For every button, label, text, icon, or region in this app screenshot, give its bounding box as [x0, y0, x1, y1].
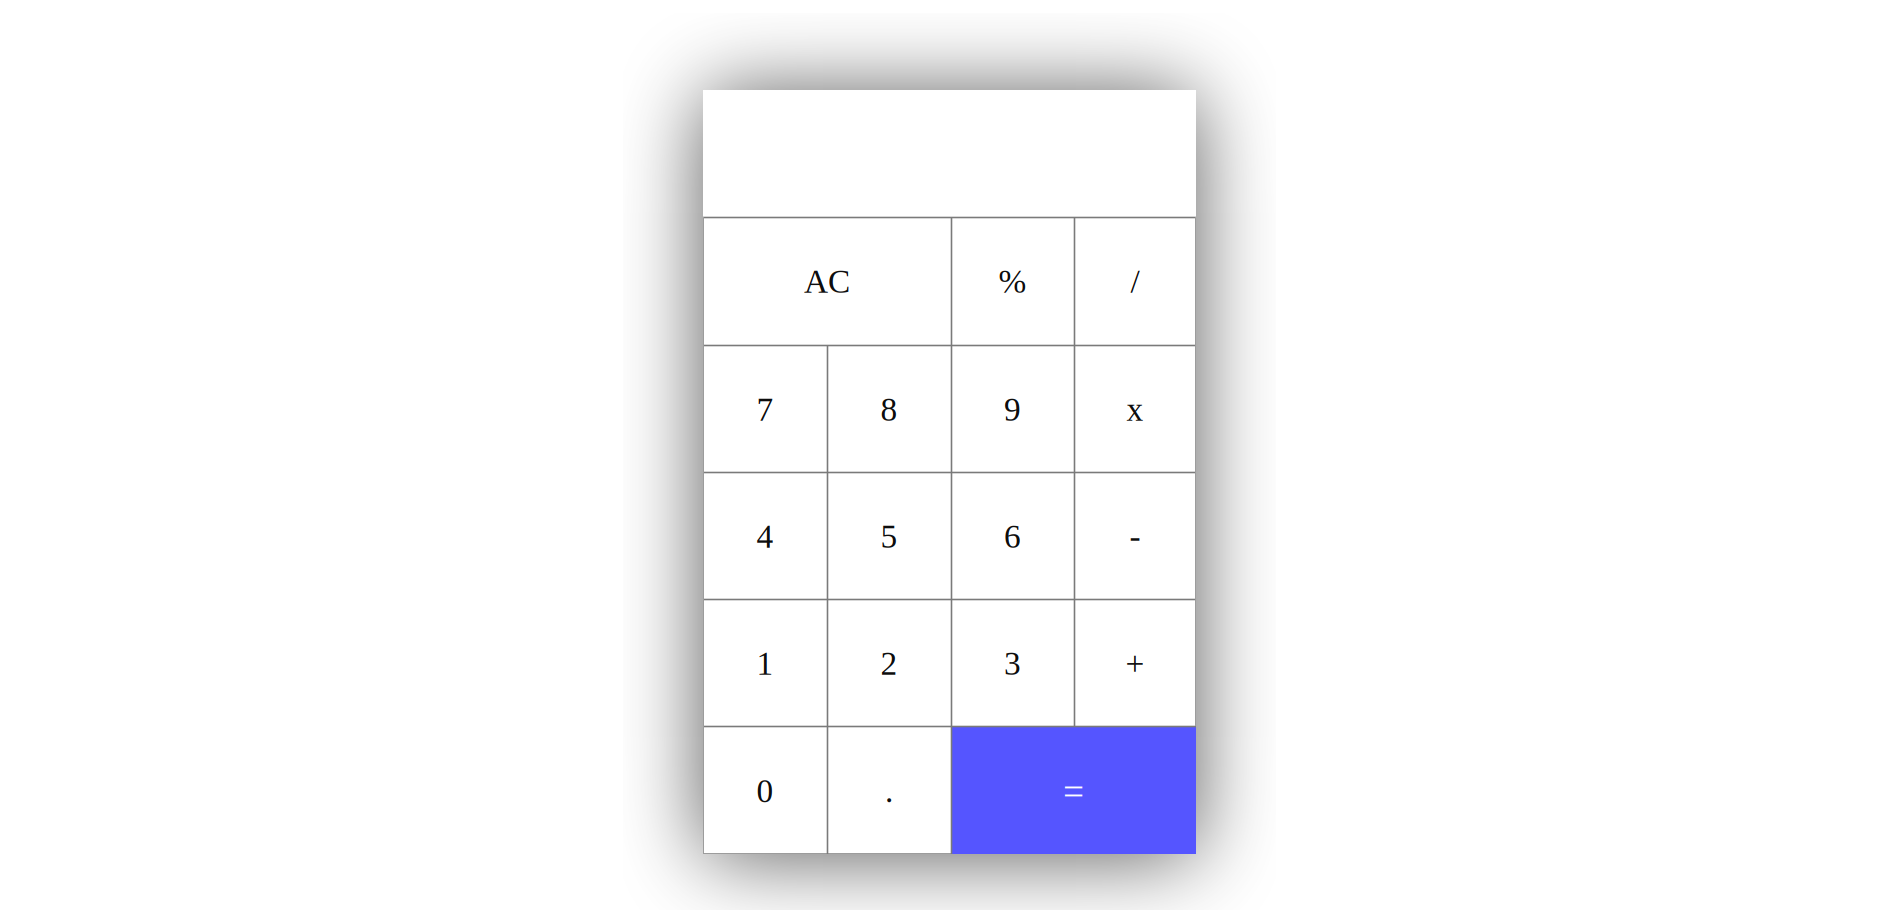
staticText: +	[1125, 645, 1144, 682]
button[interactable]: /	[1074, 217, 1196, 344]
staticText: 2	[880, 645, 897, 682]
staticText: .	[885, 772, 893, 809]
staticText: /	[1130, 263, 1139, 300]
button[interactable]: x	[1074, 345, 1196, 472]
staticText: 8	[880, 391, 897, 428]
button[interactable]: 4	[703, 472, 827, 599]
button[interactable]: 3	[951, 599, 1074, 726]
staticText: 3	[1004, 645, 1021, 682]
staticText: %	[998, 263, 1026, 300]
staticText: 9	[1004, 391, 1021, 428]
staticText: 0	[756, 772, 773, 809]
staticText: 7	[756, 391, 773, 428]
button[interactable]: 8	[827, 345, 951, 472]
button[interactable]: 0	[703, 726, 827, 854]
staticText: 5	[880, 518, 897, 555]
staticText: x	[1126, 391, 1143, 428]
staticText: 6	[1004, 518, 1021, 555]
button[interactable]: 1	[703, 599, 827, 726]
button[interactable]: .	[827, 726, 951, 854]
button[interactable]: 7	[703, 345, 827, 472]
button[interactable]: -	[1074, 472, 1196, 599]
staticText: 1	[756, 645, 773, 682]
button[interactable]: 2	[827, 599, 951, 726]
button[interactable]: AC	[703, 217, 951, 344]
button[interactable]: +	[1074, 599, 1196, 726]
staticText: AC	[804, 263, 850, 300]
button[interactable]: %	[951, 217, 1074, 344]
button[interactable]: 5	[827, 472, 951, 599]
staticText: 4	[756, 518, 773, 555]
staticText: =	[1063, 771, 1084, 813]
button[interactable]: =	[951, 726, 1196, 854]
button[interactable]: 9	[951, 345, 1074, 472]
button[interactable]: 6	[951, 472, 1074, 599]
staticText: -	[1129, 518, 1140, 555]
